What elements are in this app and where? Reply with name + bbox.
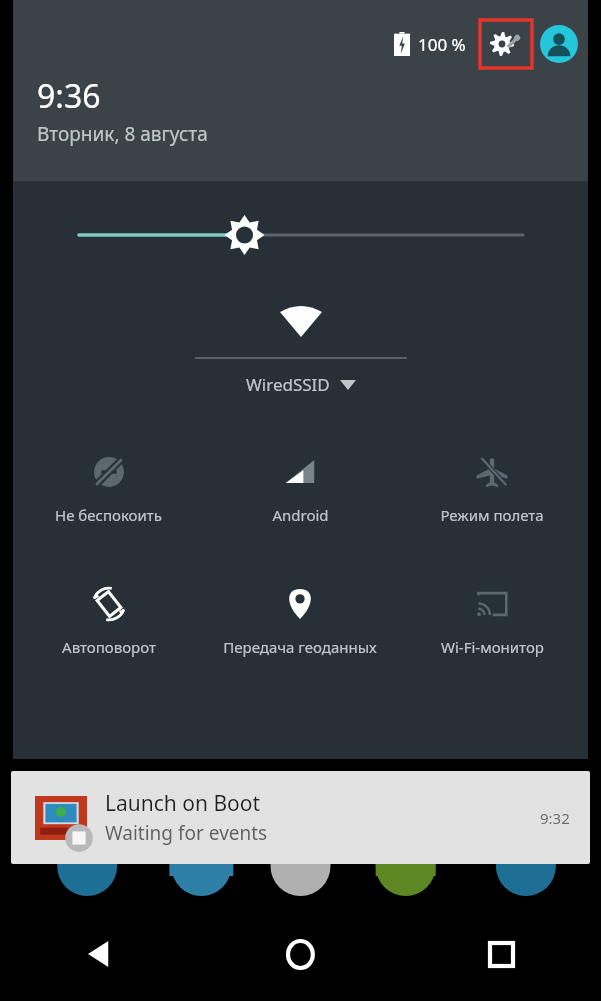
staticText: Wi-Fi-монитор <box>441 637 544 657</box>
button[interactable]: Режим полета <box>396 437 588 547</box>
staticText: Передача геоданных <box>223 637 377 657</box>
button[interactable]: WiredSSID <box>246 373 356 396</box>
staticText: Waiting for events <box>105 820 268 846</box>
staticText: 9:32 <box>540 808 570 828</box>
staticText: WiredSSID <box>246 373 330 396</box>
button[interactable]: Back <box>0 907 201 1001</box>
button[interactable]: Home <box>201 907 401 1001</box>
staticText: Автоповорот <box>62 637 156 657</box>
staticText: Не беспокоить <box>55 505 162 525</box>
button[interactable]: Wi-Fi <box>269 289 333 353</box>
staticText: Режим полета <box>440 505 544 525</box>
button[interactable]: Recents <box>401 907 601 1001</box>
staticText: Android <box>272 505 329 525</box>
staticText: Вторник, 8 августа <box>37 121 208 147</box>
button[interactable]: Brightness <box>13 181 588 289</box>
staticText: Launch on Boot <box>105 789 261 818</box>
staticText: 9:36 <box>37 74 101 118</box>
button[interactable]: Android <box>204 437 396 547</box>
button[interactable]: Автоповорот <box>13 569 204 679</box>
button[interactable]: Передача геоданных <box>204 569 396 679</box>
button[interactable]: Wi-Fi-монитор <box>396 569 588 679</box>
staticText: 100 % <box>418 33 466 56</box>
button[interactable]: Launch on Boot <box>11 771 590 864</box>
button[interactable]: Не беспокоить <box>13 437 204 547</box>
button[interactable]: User <box>540 25 578 63</box>
button[interactable]: Settings <box>480 20 532 68</box>
